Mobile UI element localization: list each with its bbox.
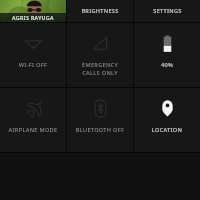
staticText: BLUETOOTH OFF	[68, 126, 132, 134]
button[interactable]: LOCATION	[134, 88, 200, 152]
button[interactable]: SETTINGS	[134, 0, 200, 22]
staticText: WI-FI OFF	[1, 61, 65, 69]
button[interactable]: EMERGENCY CALLS ONLY	[67, 23, 133, 87]
staticText: 40%	[135, 61, 199, 69]
button[interactable]: WI-FI OFF	[0, 23, 66, 87]
staticText: AGRIS RAYUGA	[12, 14, 54, 21]
staticText: LOCATION	[135, 126, 199, 134]
button[interactable]: BLUETOOTH OFF	[67, 88, 133, 152]
button[interactable]: User profile Agris Rayuga	[0, 0, 66, 22]
staticText: BRIGHTNESS	[81, 7, 119, 15]
staticText: AIRPLANE MODE	[1, 126, 65, 134]
button[interactable]: AIRPLANE MODE	[0, 88, 66, 152]
staticText: SETTINGS	[153, 7, 182, 15]
button[interactable]: BRIGHTNESS	[67, 0, 133, 22]
staticText: EMERGENCY CALLS ONLY	[68, 61, 132, 76]
button[interactable]: 40%	[134, 23, 200, 87]
